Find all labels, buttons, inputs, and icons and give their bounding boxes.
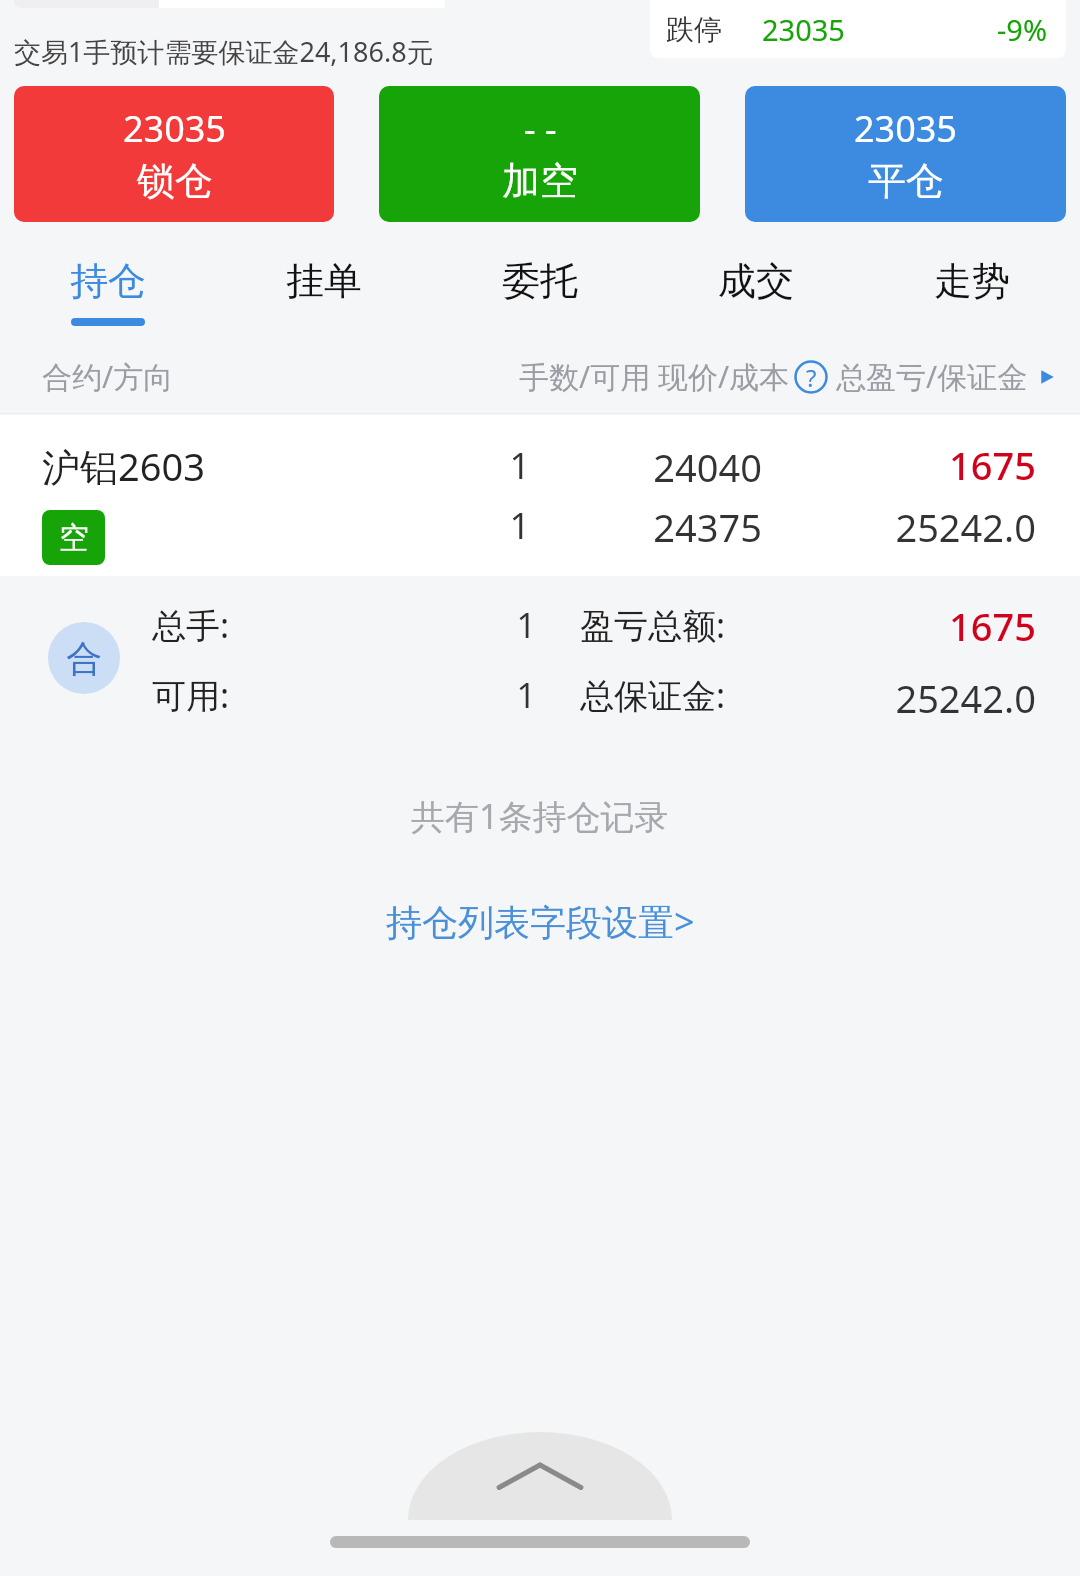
staticText: 1 bbox=[490, 501, 530, 550]
button[interactable]: 走势 bbox=[864, 241, 1080, 339]
button[interactable]: 挂单 bbox=[216, 241, 432, 339]
staticText: 交易1手预计需要保证金24,186.8元 bbox=[14, 33, 434, 70]
staticText: 合约/方向 bbox=[42, 356, 174, 397]
staticText: 1675 bbox=[716, 600, 1036, 652]
staticText: 23035 bbox=[123, 104, 226, 153]
button[interactable]: 23035 bbox=[745, 86, 1066, 222]
staticText: 共有1条持仓记录 bbox=[411, 793, 669, 839]
staticText: 23035 bbox=[762, 10, 845, 49]
button[interactable]: 合 bbox=[0, 576, 1080, 741]
staticText: 沪铝2603 bbox=[42, 440, 205, 492]
staticText: 挂单 bbox=[286, 257, 362, 305]
staticText: 委托 bbox=[502, 257, 578, 305]
staticText: -9% bbox=[997, 10, 1048, 49]
staticText: 1 bbox=[496, 672, 536, 718]
staticText: 加空 bbox=[502, 157, 578, 205]
staticText: 25242.0 bbox=[716, 501, 1036, 553]
staticText: 总盈亏/保证金 bbox=[836, 356, 1028, 397]
button[interactable]: 23035 bbox=[14, 86, 334, 222]
staticText: - - bbox=[524, 104, 557, 153]
staticText: 锁仓 bbox=[137, 157, 213, 205]
staticText: 持仓列表字段设置> bbox=[386, 897, 695, 946]
button[interactable]: Help bbox=[794, 360, 828, 394]
button[interactable]: More columns bbox=[1034, 364, 1060, 390]
staticText: 平仓 bbox=[868, 157, 944, 205]
staticText: 1 bbox=[496, 602, 536, 648]
staticText: 总保证金: bbox=[580, 672, 726, 718]
staticText: 盈亏总额: bbox=[580, 602, 726, 648]
staticText: 23035 bbox=[854, 104, 957, 153]
button[interactable]: 成交 bbox=[648, 241, 864, 339]
staticText: 成交 bbox=[718, 257, 794, 305]
staticText: 1675 bbox=[716, 439, 1036, 491]
staticText: 1 bbox=[490, 441, 530, 490]
staticText: 空 bbox=[59, 519, 89, 557]
staticText: 走势 bbox=[934, 257, 1010, 305]
button[interactable]: 委托 bbox=[432, 241, 648, 339]
staticText: 24040 bbox=[442, 441, 762, 493]
staticText: 合 bbox=[66, 636, 102, 681]
staticText: 手数/可用 现价/成本 bbox=[519, 356, 790, 397]
button[interactable]: - - bbox=[379, 86, 700, 222]
staticText: 25242.0 bbox=[716, 672, 1036, 724]
staticText: ? bbox=[806, 361, 817, 394]
staticText: 可用: bbox=[152, 672, 230, 718]
button[interactable]: 持仓 bbox=[0, 241, 216, 339]
button[interactable]: 跌停 bbox=[650, 0, 1066, 58]
button[interactable]: 持仓列表字段设置> bbox=[370, 891, 711, 952]
button[interactable]: Expand bbox=[408, 1432, 672, 1520]
staticText: 跌停 bbox=[666, 12, 722, 47]
button[interactable]: 沪铝2603 bbox=[0, 413, 1080, 576]
staticText: 持仓 bbox=[70, 257, 146, 305]
staticText: 总手: bbox=[152, 602, 230, 648]
staticText: 24375 bbox=[442, 501, 762, 553]
